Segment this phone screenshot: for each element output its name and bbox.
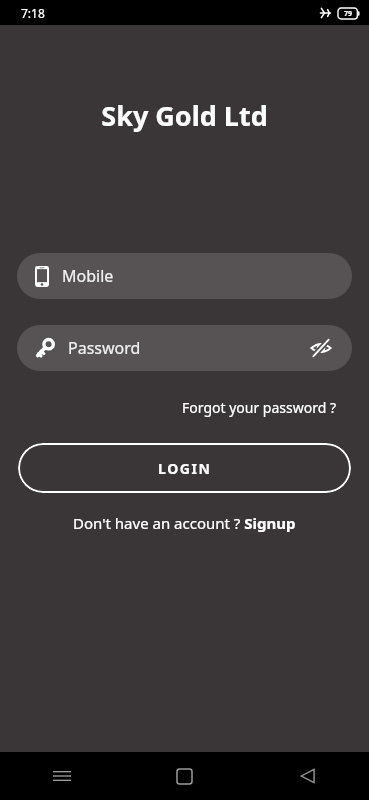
staticText: Mobile [62,265,336,287]
button[interactable]: Password [17,325,352,371]
button[interactable]: Mobile [17,253,352,299]
staticText: Don't have an account ? Signup [73,513,296,533]
button[interactable]: LOGIN [18,443,351,493]
button[interactable]: Back [246,752,369,800]
button[interactable]: Forgot your password ? [170,394,349,421]
staticText: 7:18 [21,5,45,21]
staticText: 79 [344,9,353,19]
button[interactable]: Toggle password visibility [306,333,336,363]
staticText: LOGIN [158,459,212,478]
button[interactable]: Don't have an account ? Signup [63,509,306,537]
staticText: Forgot your password ? [182,398,337,417]
staticText: Sky Gold Ltd [0,97,369,134]
button[interactable]: Recent apps [0,752,123,800]
button[interactable]: Home [123,752,246,800]
staticText: Password [68,337,306,359]
